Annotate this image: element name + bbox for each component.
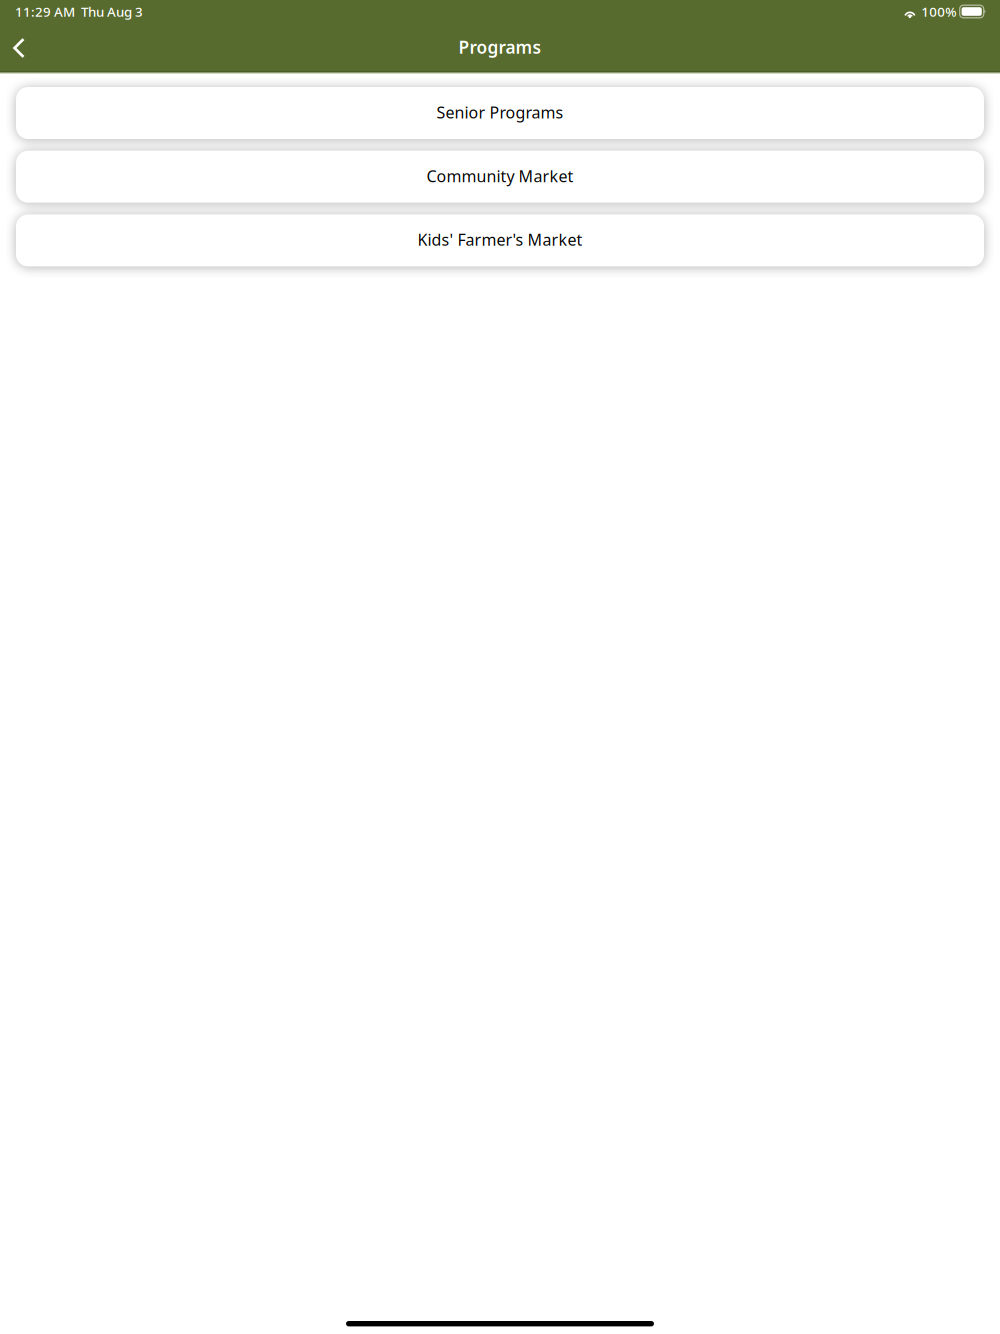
staticText: Thu Aug 3 (81, 3, 143, 20)
staticText: Programs (458, 35, 541, 58)
button[interactable]: Back (0, 23, 38, 71)
staticText: Kids' Farmer's Market (417, 229, 582, 250)
button[interactable]: Kids' Farmer's Market (16, 214, 984, 266)
staticText: 100% (921, 3, 956, 20)
button[interactable]: Community Market (16, 151, 984, 203)
button[interactable]: Senior Programs (16, 87, 984, 139)
staticText: Community Market (426, 165, 573, 186)
navigationBar: Programs (0, 0, 1000, 71)
staticText: 11:29 AM (15, 3, 75, 20)
staticText: Senior Programs (436, 102, 563, 123)
